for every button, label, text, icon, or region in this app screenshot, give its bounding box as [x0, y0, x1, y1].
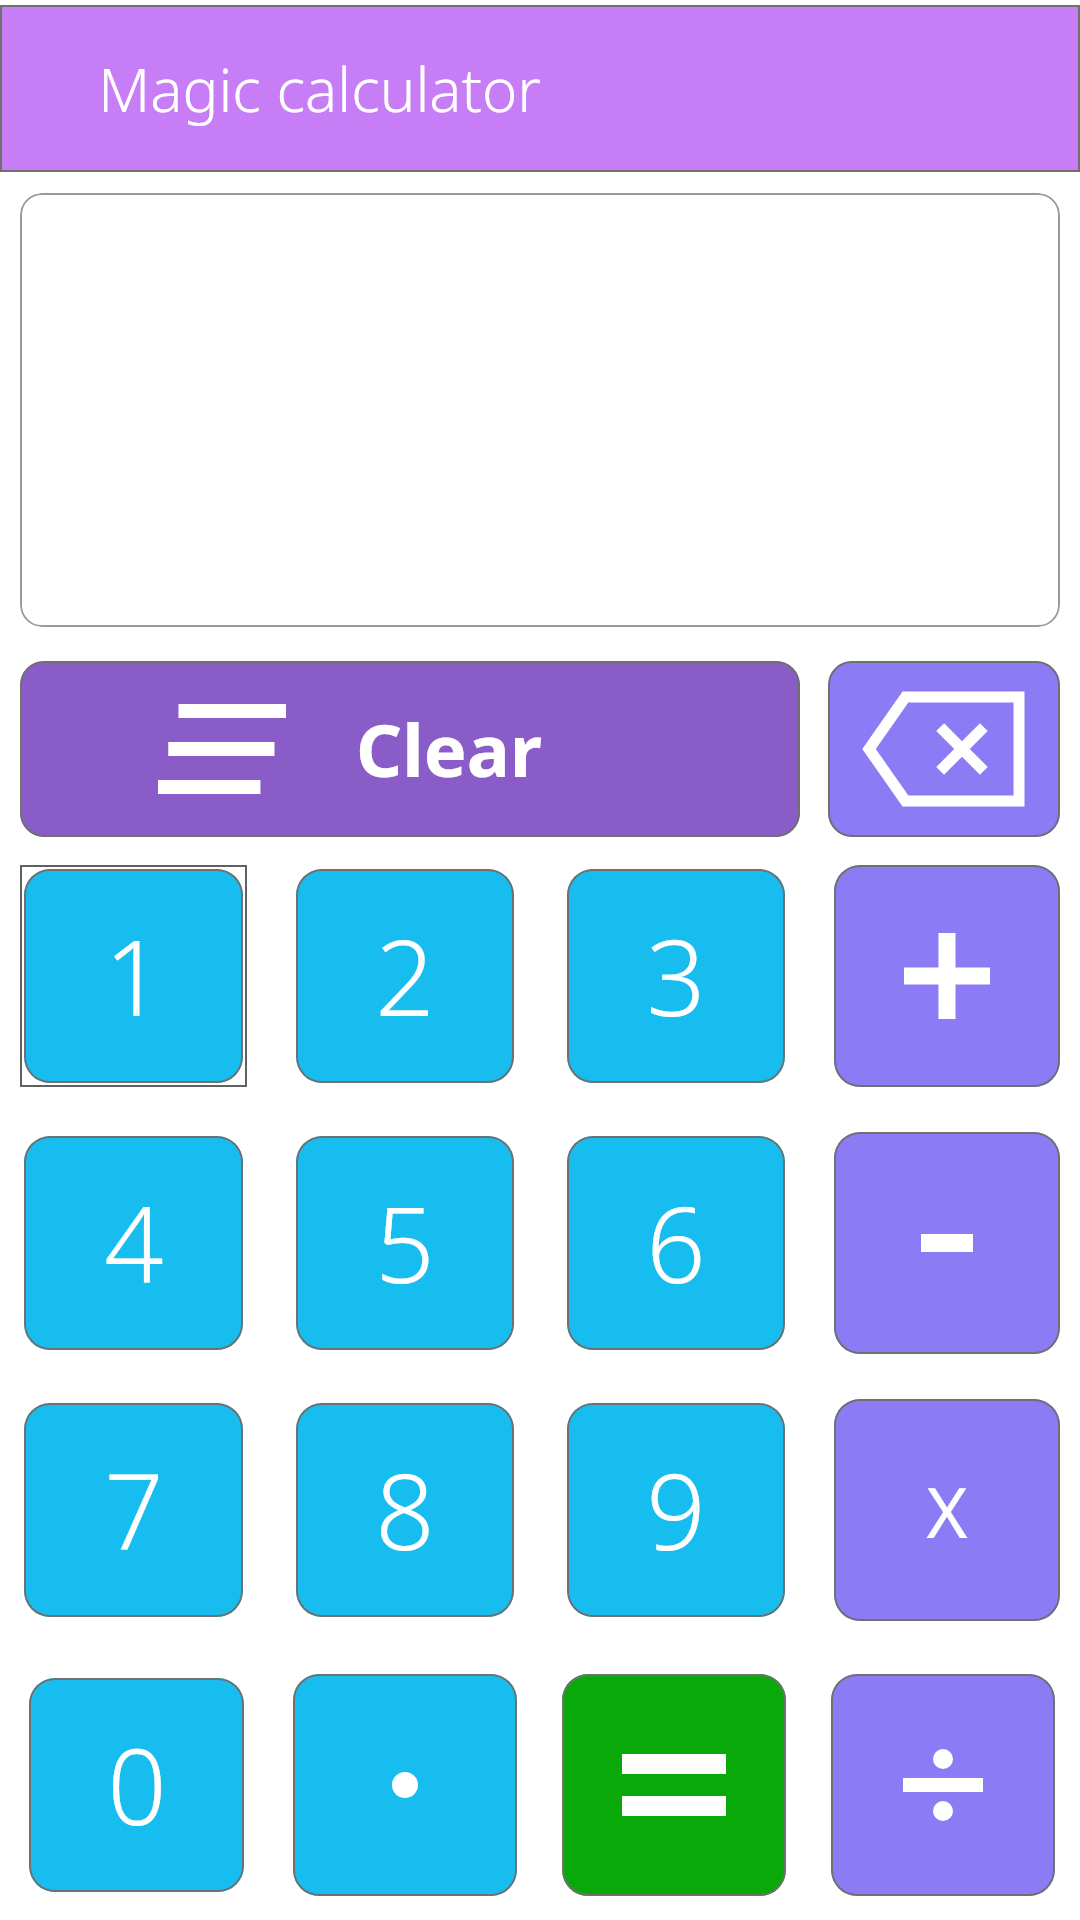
button[interactable]: Backspace: [828, 661, 1060, 837]
staticText: 4: [104, 1172, 164, 1314]
staticText: 0: [107, 1714, 167, 1856]
staticText: 2: [375, 905, 435, 1047]
button[interactable]: Clear: [20, 661, 800, 837]
staticText: 9: [646, 1439, 706, 1581]
button[interactable]: Minus: [834, 1132, 1060, 1354]
button[interactable]: Magic calculator: [0, 5, 1080, 172]
staticText: 7: [104, 1439, 164, 1581]
button[interactable]: Equals: [562, 1674, 786, 1896]
staticText: Magic calculator: [98, 48, 541, 130]
button[interactable]: 4: [24, 1136, 243, 1350]
button[interactable]: 3: [567, 869, 785, 1083]
staticText: 3: [646, 905, 706, 1047]
staticText: X: [926, 1463, 968, 1558]
button[interactable]: [20, 193, 1060, 627]
staticText: 5: [375, 1172, 435, 1314]
button[interactable]: 7: [24, 1403, 243, 1617]
button[interactable]: 6: [567, 1136, 785, 1350]
button[interactable]: 2: [296, 869, 514, 1083]
button[interactable]: 8: [296, 1403, 514, 1617]
staticText: Clear: [356, 700, 542, 798]
button[interactable]: 0: [29, 1678, 244, 1892]
button[interactable]: 5: [296, 1136, 514, 1350]
button[interactable]: 1: [24, 869, 243, 1083]
button[interactable]: Plus: [834, 865, 1060, 1087]
button[interactable]: Divide: [831, 1674, 1055, 1896]
staticText: 1: [104, 905, 164, 1047]
button[interactable]: 9: [567, 1403, 785, 1617]
staticText: 8: [375, 1439, 435, 1581]
button[interactable]: Decimal point: [293, 1674, 517, 1896]
staticText: 6: [646, 1172, 706, 1314]
button[interactable]: X: [834, 1399, 1060, 1621]
